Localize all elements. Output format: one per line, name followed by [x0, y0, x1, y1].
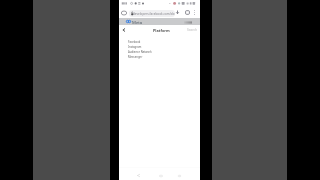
button[interactable]: More options: [193, 10, 196, 13]
button[interactable]: Navigation menu: [184, 21, 192, 24]
button[interactable]: Audience Network: [119, 49, 200, 54]
staticText: Instagram: [128, 45, 142, 49]
staticText: Search: [187, 28, 198, 32]
button[interactable]: Facebook: [119, 39, 200, 44]
button[interactable]: Instagram: [119, 44, 200, 49]
button[interactable]: Back: [136, 173, 141, 178]
button[interactable]: Messenger: [119, 54, 200, 59]
staticText: Platform: [153, 28, 170, 33]
staticText: Meta: [132, 19, 143, 25]
staticText: Facebook: [128, 40, 141, 44]
button[interactable]: Home: [158, 173, 163, 178]
button[interactable]: Home: [121, 10, 127, 16]
button[interactable]: Recent apps: [177, 173, 182, 178]
button[interactable]: Back: [122, 28, 126, 32]
button[interactable]: developers.facebook.com/do: [129, 10, 175, 17]
staticText: developers.facebook.com/do: [133, 12, 175, 16]
button[interactable]: Downloads: [175, 10, 180, 15]
button[interactable]: Tabs: [185, 10, 190, 15]
staticText: Audience Network: [128, 50, 152, 54]
staticText: Messenger: [128, 55, 143, 59]
